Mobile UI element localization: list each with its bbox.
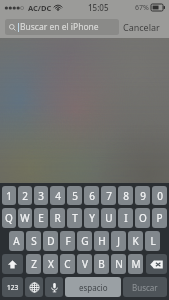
button[interactable]: B: [94, 254, 109, 274]
button[interactable]: 3: [34, 186, 48, 205]
staticText: 4: [55, 189, 61, 203]
button[interactable]: espacio: [65, 277, 121, 297]
staticText: B: [98, 257, 105, 271]
staticText: 0: [157, 189, 163, 203]
staticText: J: [117, 234, 120, 248]
button[interactable]: 4: [50, 186, 65, 205]
staticText: V: [82, 257, 88, 271]
staticText: K: [132, 234, 139, 248]
staticText: 123: [7, 283, 19, 292]
button[interactable]: Shift: [2, 254, 23, 274]
staticText: L: [150, 234, 156, 248]
button[interactable]: Buscar en el iPhone: [5, 19, 119, 35]
button[interactable]: V: [77, 254, 92, 274]
staticText: I: [124, 211, 128, 225]
staticText: espacio: [79, 282, 108, 293]
staticText: P: [156, 211, 163, 225]
button[interactable]: W: [18, 208, 32, 228]
staticText: 7: [106, 189, 112, 203]
button[interactable]: 2: [18, 186, 32, 205]
button[interactable]: 5: [67, 186, 82, 205]
staticText: E: [38, 211, 44, 225]
button[interactable]: H: [94, 231, 109, 251]
button[interactable]: Dictate: [45, 277, 63, 297]
button[interactable]: G: [77, 231, 92, 251]
staticText: C: [64, 257, 71, 271]
button[interactable]: F: [60, 231, 75, 251]
staticText: 8: [123, 189, 129, 203]
staticText: S: [31, 234, 37, 248]
button[interactable]: 6: [84, 186, 99, 205]
button[interactable]: T: [67, 208, 82, 228]
staticText: Z: [31, 257, 37, 271]
staticText: O: [139, 211, 147, 225]
staticText: T: [72, 211, 78, 225]
button[interactable]: U: [101, 208, 116, 228]
button[interactable]: 9: [135, 186, 150, 205]
button[interactable]: D: [43, 231, 58, 251]
button[interactable]: O: [135, 208, 150, 228]
staticText: Buscar: [132, 282, 158, 293]
staticText: Y: [89, 211, 95, 225]
button[interactable]: J: [111, 231, 126, 251]
staticText: W: [20, 211, 30, 225]
staticText: R: [54, 211, 61, 225]
staticText: Cancelar: [123, 21, 160, 33]
staticText: M: [131, 257, 141, 271]
staticText: U: [105, 211, 113, 225]
button[interactable]: Z: [26, 254, 41, 274]
staticText: 5: [72, 189, 78, 203]
staticText: 67%: [135, 3, 149, 13]
staticText: G: [81, 234, 89, 248]
button[interactable]: N: [111, 254, 126, 274]
button[interactable]: Change keyboard: [25, 277, 43, 297]
staticText: 2: [22, 189, 28, 203]
button[interactable]: R: [50, 208, 65, 228]
button[interactable]: 0: [152, 186, 167, 205]
button[interactable]: 8: [118, 186, 133, 205]
button[interactable]: P: [152, 208, 167, 228]
button[interactable]: Q: [2, 208, 16, 228]
button[interactable]: I: [118, 208, 133, 228]
staticText: Q: [5, 211, 13, 225]
staticText: N: [115, 257, 123, 271]
button[interactable]: A: [9, 231, 24, 251]
button[interactable]: 1: [2, 186, 16, 205]
button[interactable]: Cancelar: [119, 18, 164, 36]
button[interactable]: S: [26, 231, 41, 251]
button[interactable]: C: [60, 254, 75, 274]
button[interactable]: 7: [101, 186, 116, 205]
button[interactable]: L: [145, 231, 160, 251]
staticText: 15:05: [88, 2, 109, 13]
staticText: 9: [140, 189, 146, 203]
staticText: F: [65, 234, 71, 248]
button[interactable]: 123: [2, 277, 23, 297]
staticText: D: [47, 234, 55, 248]
staticText: 3: [38, 189, 44, 203]
button[interactable]: M: [128, 254, 143, 274]
button[interactable]: Y: [84, 208, 99, 228]
button[interactable]: X: [43, 254, 58, 274]
staticText: A: [13, 234, 20, 248]
staticText: H: [98, 234, 106, 248]
staticText: 1: [6, 189, 12, 203]
button[interactable]: K: [128, 231, 143, 251]
staticText: Buscar en el iPhone: [20, 21, 99, 33]
button[interactable]: E: [34, 208, 48, 228]
staticText: X: [48, 257, 54, 271]
button[interactable]: Backspace: [146, 254, 167, 274]
staticText: 6: [89, 189, 95, 203]
staticText: AC/DC: [28, 3, 52, 13]
button[interactable]: Buscar: [123, 277, 167, 297]
